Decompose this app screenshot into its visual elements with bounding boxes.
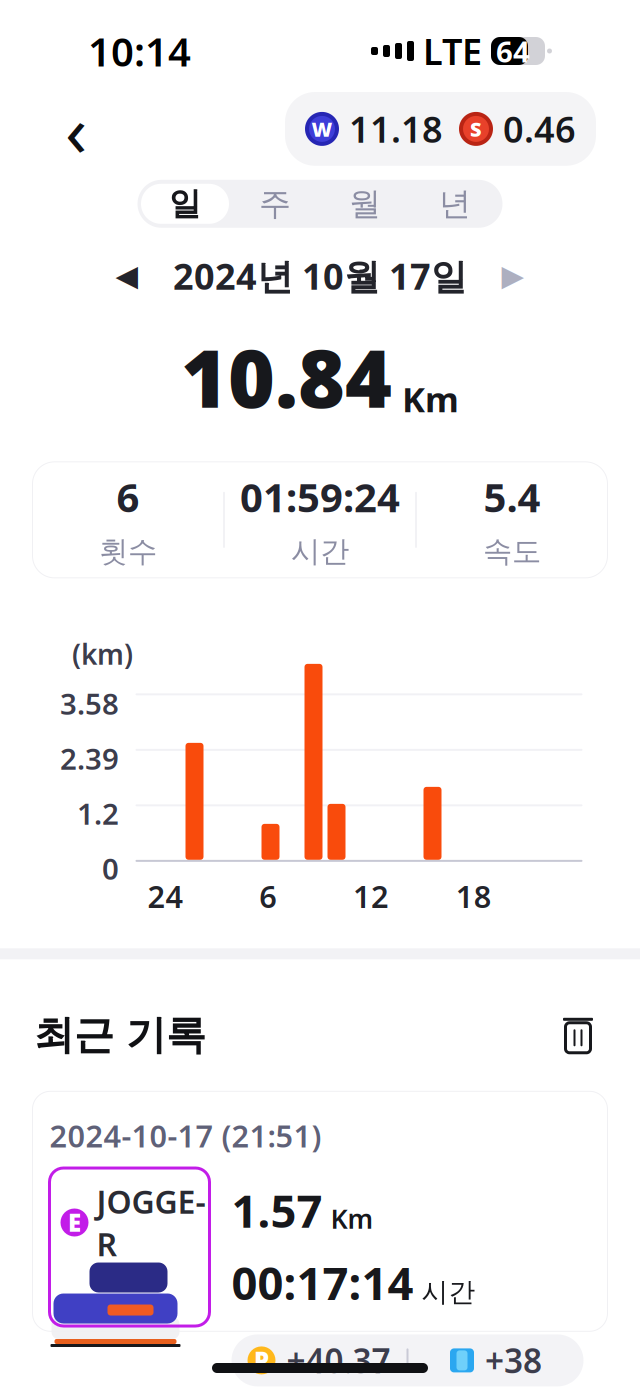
staticText: 24 bbox=[147, 876, 183, 916]
staticText: 1.2 bbox=[77, 794, 119, 833]
staticText: 2.39 bbox=[60, 739, 119, 778]
staticText: Km bbox=[330, 1201, 373, 1236]
staticText: ▶ bbox=[501, 259, 524, 292]
staticText: E bbox=[68, 1207, 81, 1238]
staticText: 1.57 bbox=[231, 1180, 322, 1240]
button[interactable]: W bbox=[285, 92, 596, 166]
staticText: 01:59:24 bbox=[240, 470, 400, 523]
staticText: 속도 bbox=[483, 533, 541, 569]
button[interactable]: Previous day bbox=[103, 254, 151, 298]
staticText: 일 bbox=[169, 184, 201, 223]
staticText: 횟수 bbox=[99, 533, 157, 569]
staticText: 00:17:14 bbox=[231, 1252, 413, 1312]
staticText: 64 bbox=[496, 31, 530, 70]
staticText: W bbox=[311, 116, 332, 142]
staticText: 0.46 bbox=[503, 105, 576, 153]
staticText: +40.37 bbox=[286, 1338, 390, 1383]
staticText: 6 bbox=[116, 470, 139, 523]
staticText: 10:14 bbox=[88, 24, 191, 77]
button[interactable]: 일 bbox=[140, 184, 230, 224]
staticText: 월 bbox=[349, 184, 381, 223]
button[interactable]: 2024-10-17 (21:51) bbox=[32, 1091, 607, 1331]
staticText: S bbox=[470, 116, 482, 142]
staticText: 10.84 bbox=[181, 324, 392, 430]
button[interactable]: Delete records bbox=[550, 1007, 606, 1063]
button[interactable]: Next day bbox=[489, 254, 537, 298]
staticText: 최근 기록 bbox=[34, 1011, 206, 1060]
staticText: LTE bbox=[423, 27, 482, 75]
staticText: 11.18 bbox=[349, 105, 443, 153]
staticText: +38 bbox=[485, 1338, 542, 1383]
staticText: ◀ bbox=[115, 259, 138, 292]
button[interactable]: Back bbox=[44, 97, 108, 161]
staticText: 시간 bbox=[291, 533, 349, 569]
staticText: 0 bbox=[102, 849, 119, 888]
staticText: 2024-10-17 (21:51) bbox=[49, 1115, 321, 1156]
staticText: 년 bbox=[439, 184, 471, 223]
staticText: P bbox=[254, 1344, 269, 1376]
staticText: 3.58 bbox=[60, 684, 119, 723]
staticText: 주 bbox=[259, 184, 291, 223]
staticText: 6 bbox=[259, 876, 277, 916]
staticText: 18 bbox=[456, 876, 492, 916]
staticText: Km bbox=[402, 376, 459, 422]
button[interactable]: 월 bbox=[320, 184, 410, 224]
staticText: 12 bbox=[353, 876, 389, 916]
button[interactable]: 년 bbox=[410, 184, 500, 224]
staticText: 시간 bbox=[421, 1276, 475, 1308]
staticText: 2024년 10월 17일 bbox=[173, 252, 467, 300]
staticText: (km) bbox=[72, 635, 133, 672]
staticText: ‹ bbox=[65, 81, 87, 177]
staticText: 5.4 bbox=[483, 470, 540, 523]
button[interactable]: 주 bbox=[230, 184, 320, 224]
staticText: JOGGER bbox=[96, 1180, 205, 1265]
